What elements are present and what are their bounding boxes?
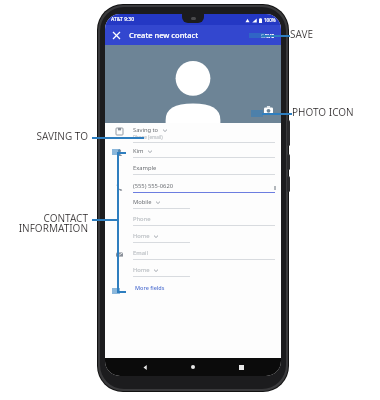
button[interactable]: Home [105,266,281,278]
button[interactable]: Back [137,359,153,375]
staticText: Mobile [133,198,152,206]
staticText: SAVE [261,32,275,39]
button[interactable]: Home [105,232,281,244]
staticText: Saving to [133,126,159,134]
button[interactable]: Email [105,249,281,261]
staticText: 100% [264,17,276,23]
staticText: SAVE [290,27,376,41]
staticText: Phone [133,215,151,223]
staticText: CONTACT [12,211,88,225]
staticText: SAVING TO [20,129,88,143]
staticText: Home [133,266,150,274]
staticText: Kim [133,147,144,155]
staticText: More fields [135,284,165,291]
button[interactable]: Mobile [105,198,281,210]
staticText: PHOTO ICON [292,105,378,119]
button[interactable]: Home [185,359,201,375]
button[interactable]: Saving to [105,126,281,143]
button[interactable]: Example [105,164,281,176]
button[interactable]: SAVE [257,29,279,42]
staticText: (555) 555-0620 [133,182,174,190]
button[interactable]: Phone [105,215,281,227]
button[interactable]: Add photo [262,104,274,116]
staticText: Phone (email) [133,134,163,140]
staticText: Email [133,249,148,257]
staticText: INFORMATION [4,221,88,235]
staticText: Create new contact [129,30,199,40]
button[interactable]: More fields [134,282,166,293]
button[interactable]: Kim [105,147,281,159]
staticText: Example [133,164,157,172]
staticText: AT&T 9:30 [111,16,135,23]
button[interactable]: Close [108,27,124,43]
button[interactable]: (555) 555-0620 [105,182,281,194]
button[interactable]: Recents [233,359,249,375]
staticText: Home [133,232,150,240]
